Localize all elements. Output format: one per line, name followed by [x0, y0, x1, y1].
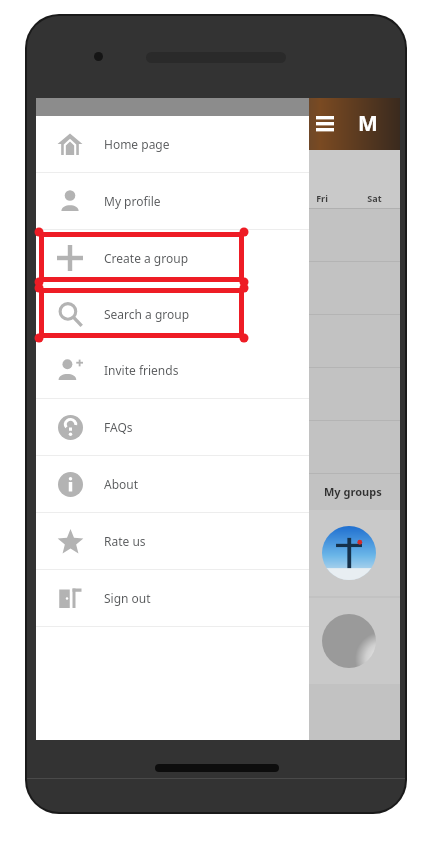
- staticText: 03: [56, 267, 68, 281]
- staticText: About: [104, 476, 139, 492]
- staticText: Home page: [104, 136, 170, 152]
- staticText: Rate us: [104, 533, 146, 549]
- button[interactable]: Rate us: [36, 513, 309, 569]
- button[interactable]: FAQs: [36, 399, 309, 455]
- button[interactable]: Open navigation drawer: [312, 112, 338, 138]
- button[interactable]: Search a group: [36, 286, 309, 342]
- staticText: Create a group: [104, 250, 189, 266]
- staticText: Mon: [104, 192, 124, 204]
- staticText: Tue: [158, 192, 174, 204]
- staticText: My groups: [324, 484, 382, 499]
- staticText: Sat: [367, 192, 382, 204]
- button[interactable]: Sign out: [36, 570, 309, 626]
- button[interactable]: [298, 510, 400, 596]
- staticText: 24: [56, 426, 68, 440]
- staticText: Sun: [54, 192, 71, 204]
- button[interactable]: Home page: [36, 116, 309, 172]
- staticText: Invite friends: [104, 362, 179, 378]
- staticText: M: [358, 109, 378, 138]
- button[interactable]: Create a group: [36, 230, 309, 286]
- staticText: My profile: [104, 193, 161, 209]
- button[interactable]: My profile: [36, 173, 309, 229]
- button[interactable]: About: [36, 456, 309, 512]
- button[interactable]: [298, 598, 400, 684]
- staticText: 10: [56, 320, 68, 334]
- staticText: 17: [56, 373, 68, 387]
- staticText: FAQs: [104, 419, 133, 435]
- staticText: Search a group: [104, 306, 190, 322]
- button[interactable]: Invite friends: [36, 342, 309, 398]
- staticText: Sign out: [104, 590, 151, 606]
- staticText: Fri: [316, 192, 328, 204]
